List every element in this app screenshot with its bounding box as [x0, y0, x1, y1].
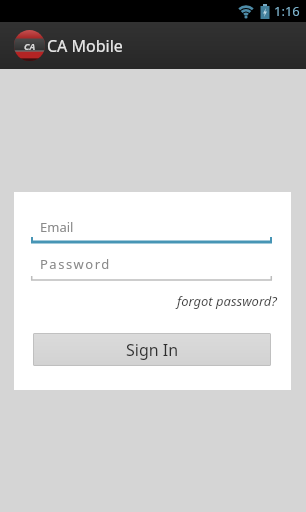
staticText: CA [24, 40, 36, 52]
staticText: Password [40, 255, 111, 273]
staticText: CA Mobile [47, 35, 123, 57]
button[interactable]: forgot password? [177, 292, 277, 310]
button[interactable]: Password [31, 250, 272, 282]
staticText: Email [40, 218, 74, 236]
button[interactable]: Sign In [33, 333, 271, 366]
button[interactable]: Email [31, 212, 272, 244]
staticText: 1:16 [274, 2, 300, 20]
staticText: Sign In [126, 339, 179, 361]
